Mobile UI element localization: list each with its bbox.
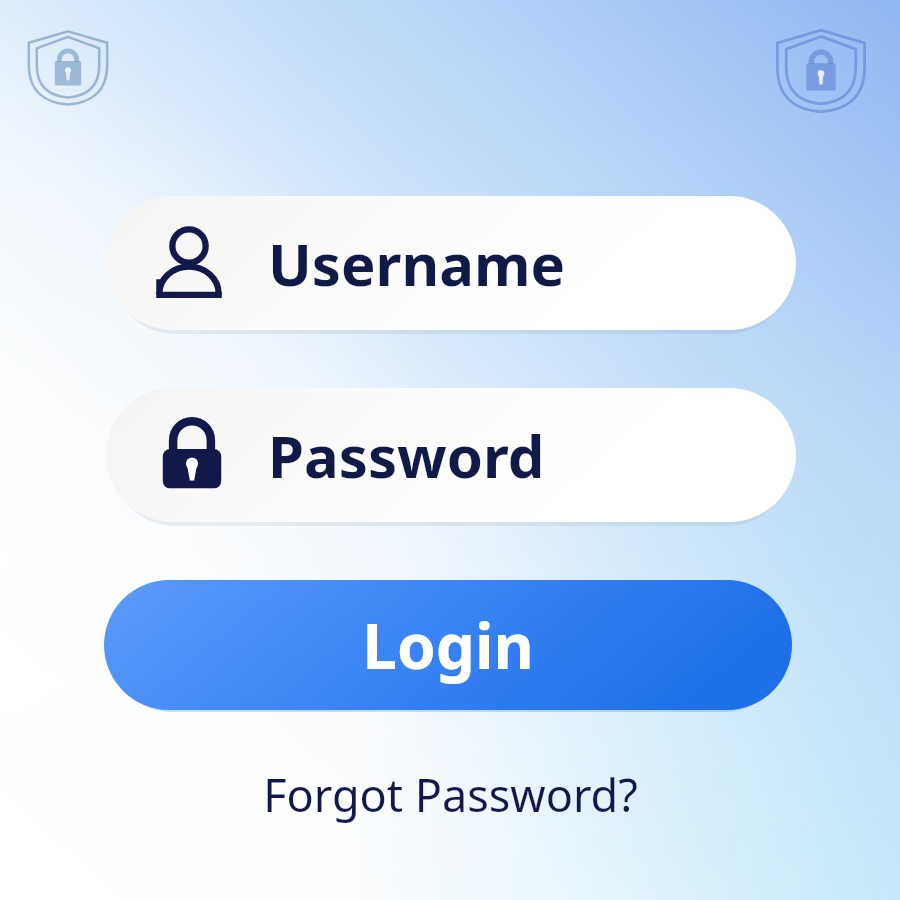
button[interactable]: Forgot Password? bbox=[210, 758, 690, 830]
staticText: Password bbox=[268, 416, 545, 495]
button[interactable]: Login bbox=[104, 580, 792, 710]
button[interactable]: Password bbox=[106, 388, 796, 522]
staticText: Username bbox=[268, 224, 566, 303]
button[interactable]: Username bbox=[106, 196, 796, 330]
other: Security shield bbox=[24, 24, 112, 112]
staticText: Forgot Password? bbox=[263, 764, 638, 825]
other: Security shield bbox=[772, 22, 870, 120]
staticText: Login bbox=[362, 603, 534, 687]
